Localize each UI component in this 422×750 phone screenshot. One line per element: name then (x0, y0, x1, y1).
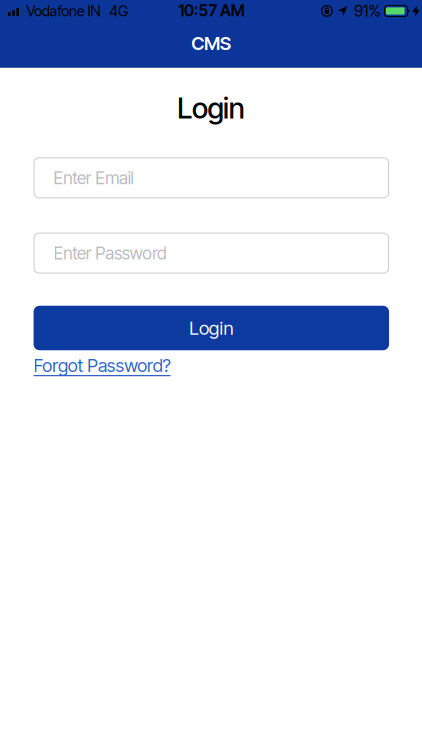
staticText: CMS (191, 32, 231, 55)
staticText: 4G (109, 2, 128, 20)
staticText: Enter Email (54, 167, 134, 188)
staticText: Login (189, 317, 233, 339)
staticText: 10:57 AM (178, 1, 245, 20)
button[interactable]: Enter Password (34, 233, 389, 274)
staticText: Vodafone IN (26, 2, 100, 20)
staticText: 91% (354, 1, 380, 21)
button[interactable]: Forgot Password? (34, 355, 389, 376)
staticText: Enter Password (54, 243, 167, 264)
staticText: Forgot Password? (34, 355, 171, 376)
button[interactable]: Login (34, 306, 389, 350)
staticText: Login (177, 91, 245, 125)
button[interactable]: Enter Email (34, 157, 389, 198)
